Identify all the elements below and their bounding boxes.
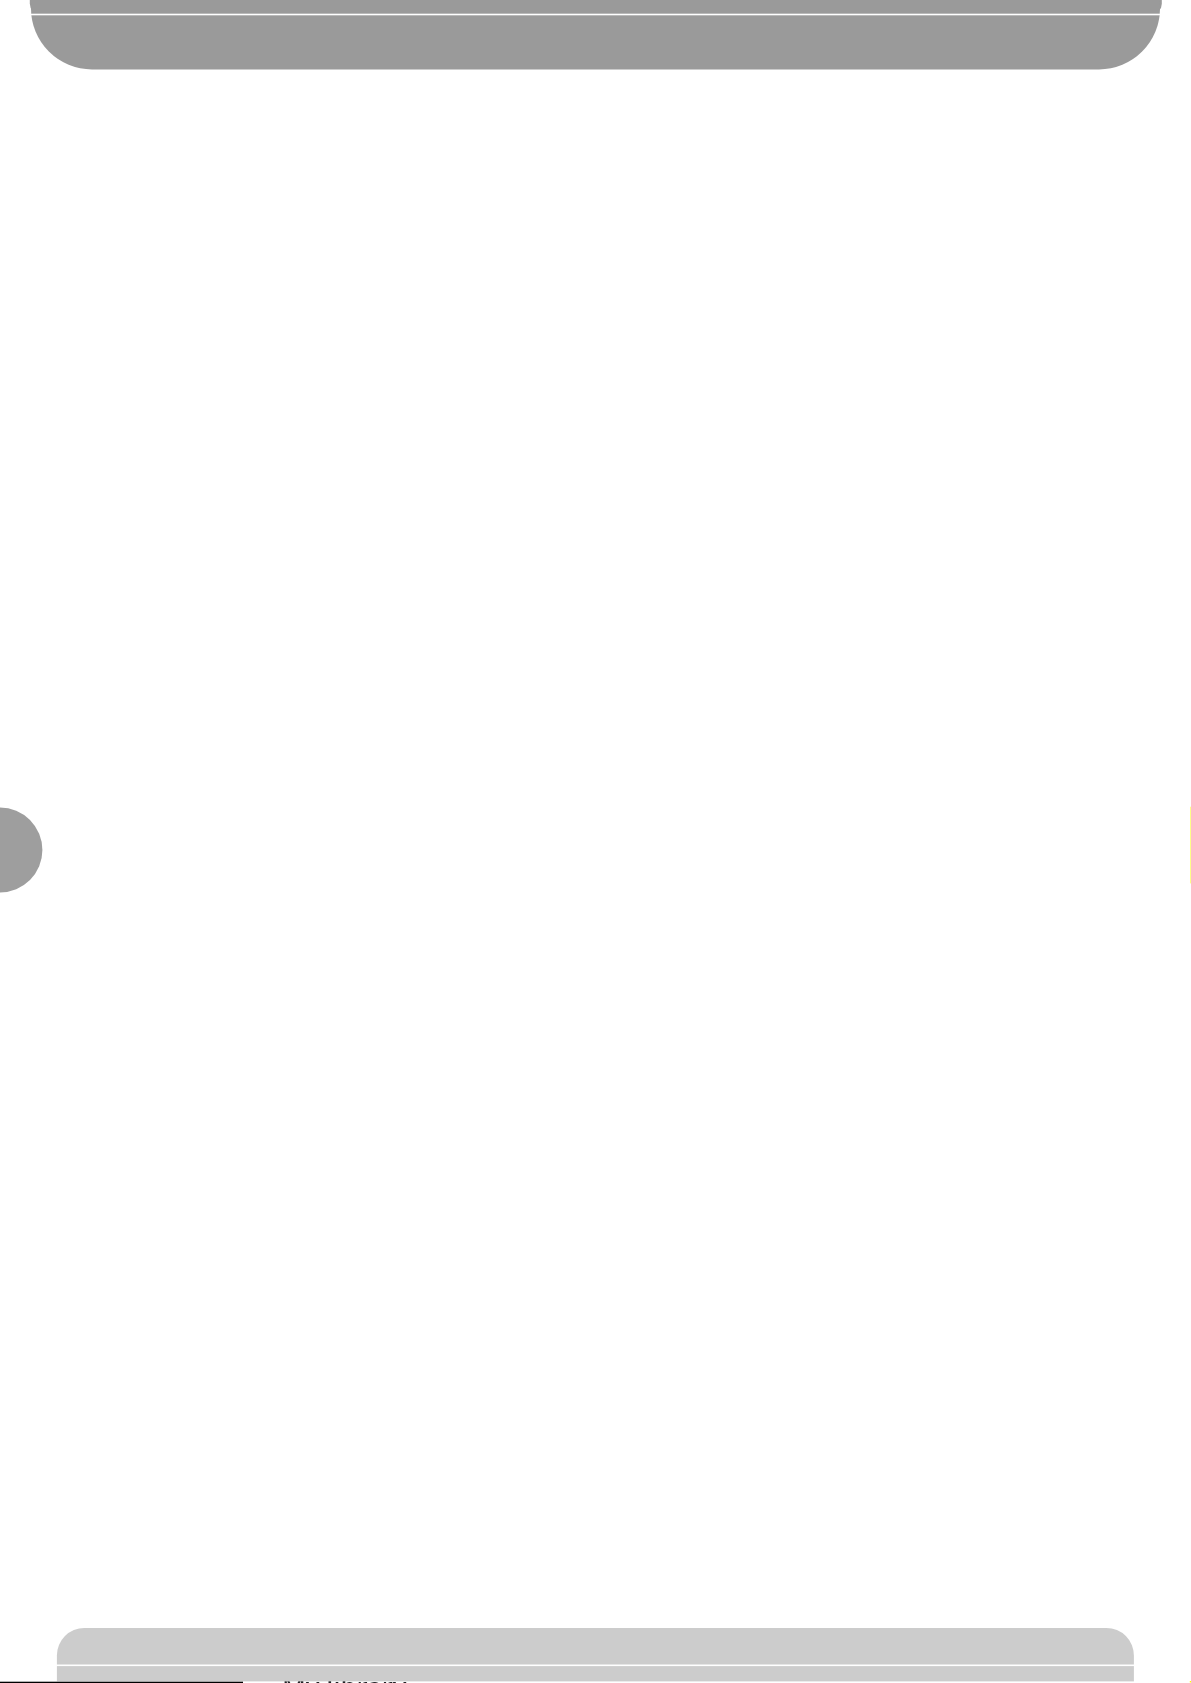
- button[interactable]: Highlight marker: [1148, 807, 1191, 884]
- button[interactable]: Home: [57, 1666, 327, 1683]
- button[interactable]: Search: [327, 1666, 596, 1683]
- button[interactable]: Profile: [865, 1666, 1134, 1683]
- button[interactable]: Floating action button: [0, 808, 43, 893]
- button[interactable]: Featured card: [31, 15, 1160, 70]
- staticText: My library: [282, 1668, 407, 1683]
- button[interactable]: Library: [596, 1666, 865, 1683]
- button[interactable]: Top app bar: [30, 0, 1162, 14]
- button[interactable]: Bottom sheet: [57, 1628, 1134, 1665]
